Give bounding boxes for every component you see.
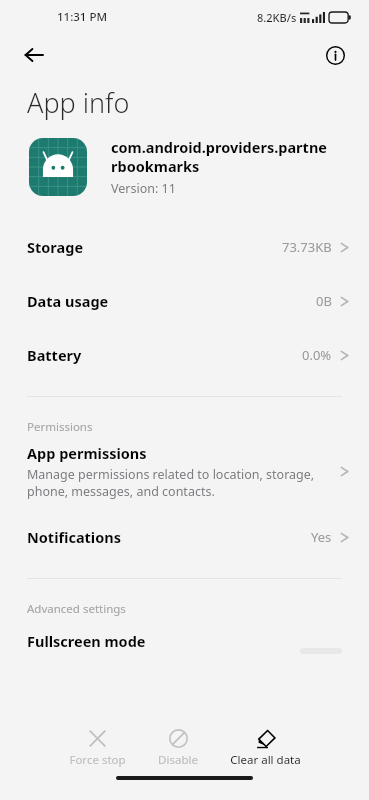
- staticText: Yes: [311, 528, 332, 546]
- button[interactable]: App permissions: [0, 435, 369, 510]
- other: Open: [340, 294, 349, 309]
- staticText: 0.0%: [302, 346, 332, 364]
- button[interactable]: Clear all data: [222, 726, 309, 770]
- other: Open: [340, 530, 349, 545]
- staticText: App info: [27, 84, 130, 121]
- button[interactable]: Storage: [0, 220, 369, 274]
- staticText: Disable: [158, 752, 198, 768]
- staticText: Permissions: [27, 419, 93, 435]
- staticText: Advanced settings: [27, 601, 126, 617]
- button[interactable]: Force stop: [61, 726, 134, 770]
- button[interactable]: App details info: [315, 35, 355, 75]
- button[interactable]: Fullscreen mode: [0, 617, 369, 665]
- other: Open: [340, 348, 349, 363]
- button[interactable]: Data usage: [0, 274, 369, 328]
- staticText: Notifications: [27, 527, 121, 547]
- button[interactable]: Back: [14, 35, 54, 75]
- button[interactable]: Notifications: [0, 510, 369, 564]
- staticText: com.android.providers.partne rbookmarks: [111, 137, 327, 176]
- other: Open: [340, 240, 349, 255]
- staticText: 8.2KB/s: [257, 10, 297, 25]
- staticText: Version: 11: [111, 180, 176, 197]
- staticText: 73.73KB: [282, 238, 332, 256]
- staticText: App permissions: [27, 443, 147, 463]
- staticText: Manage permissions related to location, …: [27, 466, 315, 500]
- other: Open: [340, 464, 349, 479]
- button[interactable]: Disable: [150, 726, 206, 770]
- staticText: Storage: [27, 237, 84, 257]
- staticText: 0B: [316, 292, 332, 310]
- staticText: 11:31 PM: [57, 9, 108, 25]
- staticText: Force stop: [69, 752, 126, 768]
- button[interactable]: Battery: [0, 328, 369, 382]
- staticText: Clear all data: [230, 752, 301, 768]
- staticText: Fullscreen mode: [27, 631, 146, 651]
- staticText: Battery: [27, 345, 82, 365]
- staticText: Data usage: [27, 291, 109, 311]
